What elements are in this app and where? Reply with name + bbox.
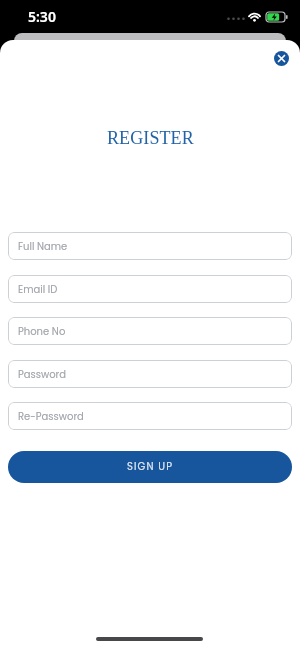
button[interactable]: Email ID [8,275,292,303]
button[interactable]: Re-Password [8,402,292,430]
button[interactable]: Password [8,360,292,388]
button[interactable]: Full Name [8,232,292,260]
staticText: Re-Password [18,409,84,423]
button[interactable]: Phone No [8,317,292,345]
staticText: Password [18,367,67,381]
button[interactable] [274,51,289,66]
staticText: REGISTER [107,128,194,148]
button[interactable]: SIGN UP [8,451,292,483]
staticText: SIGN UP [127,459,174,473]
staticText: Full Name [18,239,68,253]
staticText: Phone No [18,324,66,338]
staticText: 5:30 [28,7,56,26]
staticText: Email ID [18,282,58,296]
